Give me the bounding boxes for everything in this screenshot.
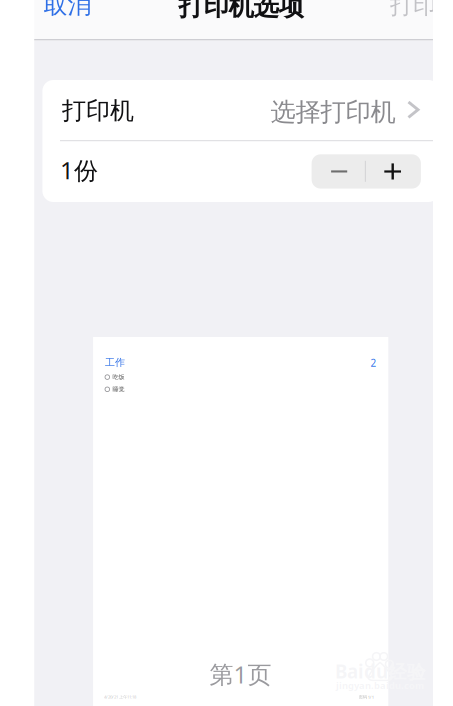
- staticText: 页码 1/1: [359, 694, 374, 700]
- staticText: 吃饭: [113, 373, 125, 381]
- button[interactable]: Decrease copies: [312, 154, 366, 189]
- staticText: jingyan.baidu.com: [336, 679, 424, 692]
- button[interactable]: Increase copies: [367, 154, 421, 189]
- staticText: 打印机选项: [178, 0, 303, 22]
- staticText: 打印机: [62, 96, 134, 126]
- button[interactable]: 打印机: [42, 80, 439, 139]
- staticText: 1份: [60, 154, 98, 186]
- staticText: 2: [370, 356, 376, 370]
- button[interactable]: 取消: [38, 0, 98, 24]
- staticText: 工作: [105, 356, 125, 369]
- staticText: 取消: [44, 0, 92, 20]
- staticText: 4/20/21 上午11:18: [104, 694, 136, 700]
- staticText: 打印: [390, 0, 436, 20]
- staticText: 第1页: [210, 658, 272, 690]
- button[interactable]: 打印: [384, 0, 442, 24]
- staticText: Baidu经验: [335, 658, 426, 684]
- staticText: 睡觉: [113, 385, 125, 393]
- staticText: 选择打印机: [270, 96, 395, 128]
